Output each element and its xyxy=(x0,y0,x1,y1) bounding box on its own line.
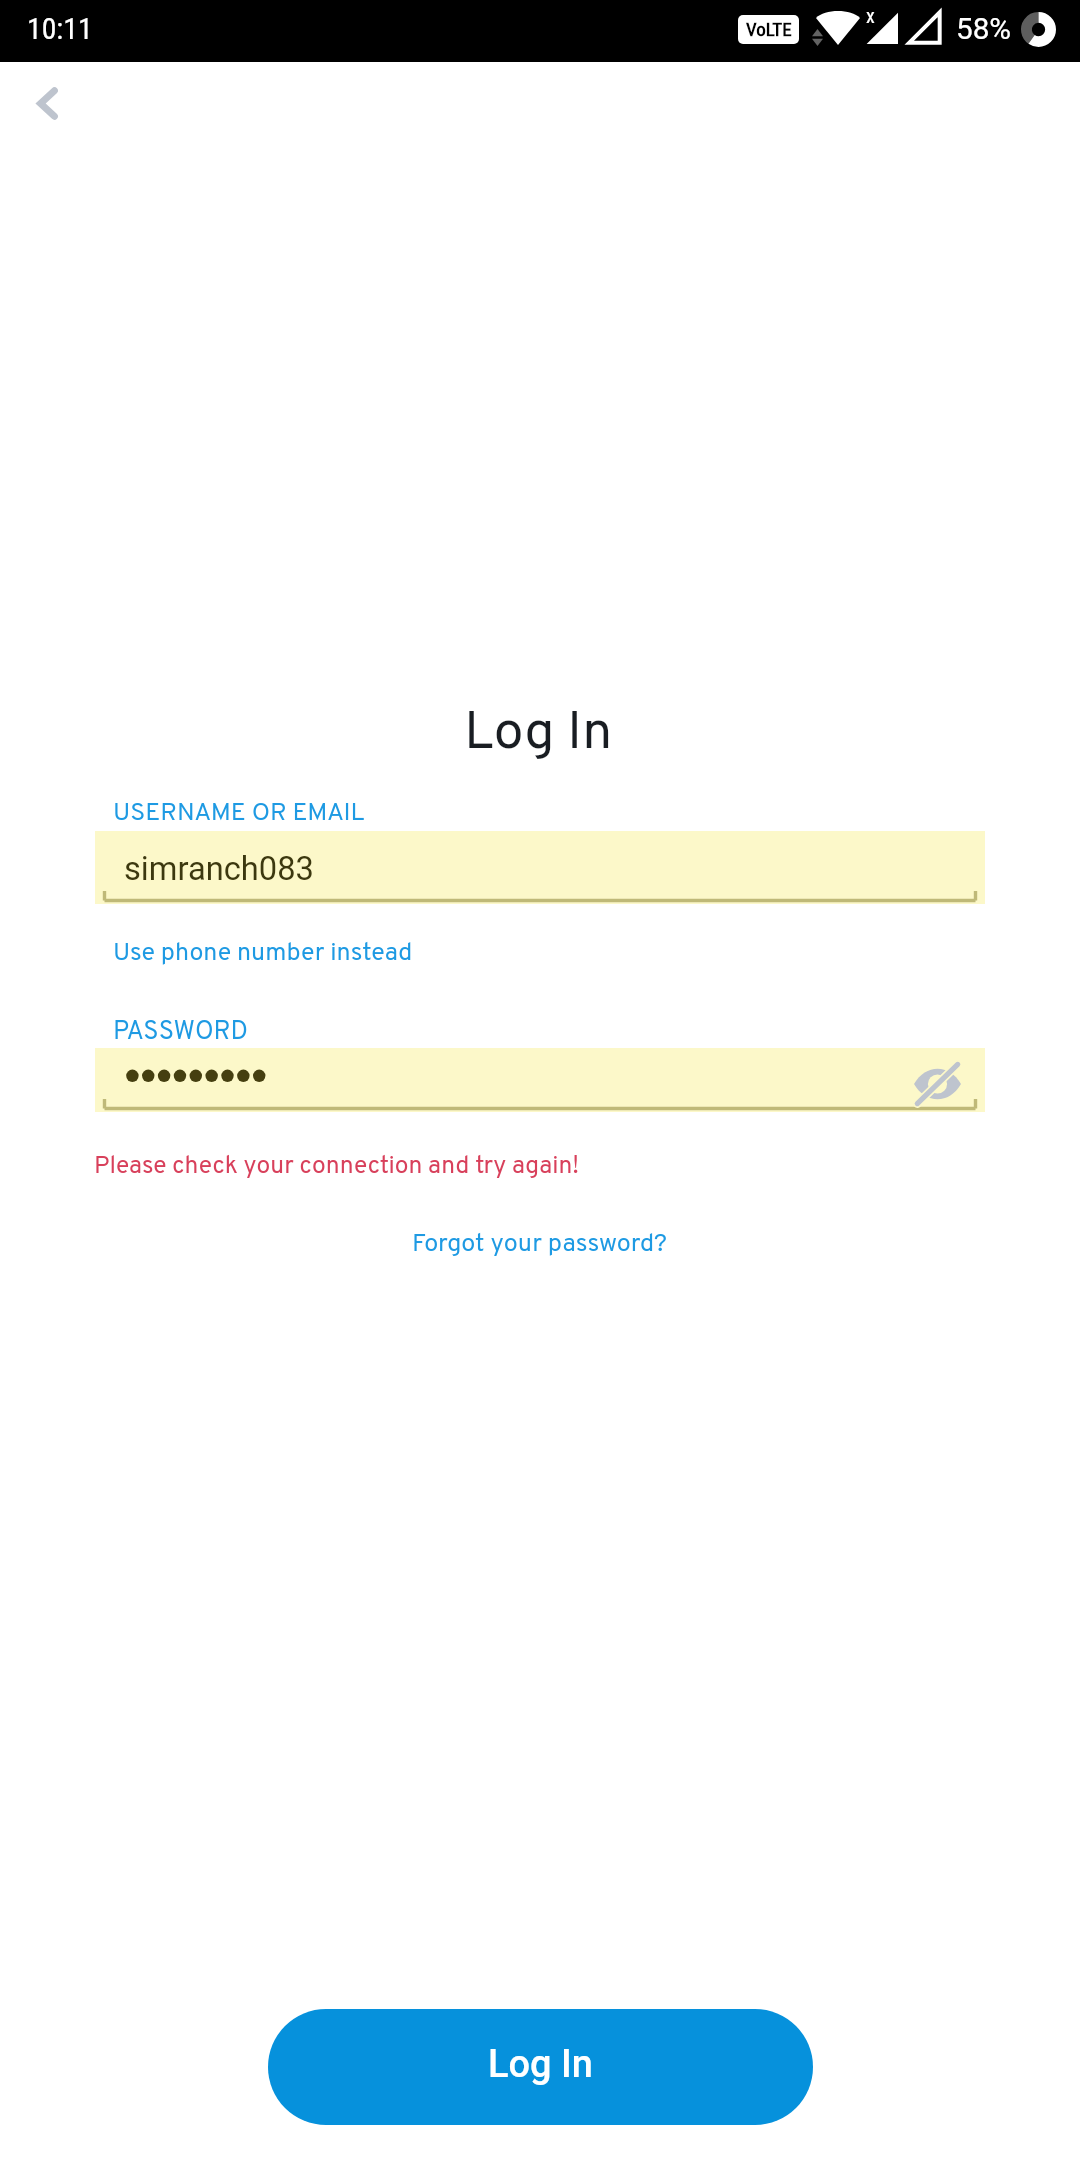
button[interactable]: Log In xyxy=(268,2009,813,2125)
staticText: simranch083 xyxy=(124,850,314,888)
button[interactable]: Forgot your password? xyxy=(412,1229,668,1261)
staticText: VoLTE xyxy=(746,18,792,40)
button[interactable]: Back xyxy=(5,61,89,145)
staticText: Please check your connection and try aga… xyxy=(94,1151,580,1182)
button[interactable]: Show password xyxy=(895,1048,975,1112)
staticText: 10:11 xyxy=(27,11,93,46)
button[interactable]: Use phone number instead xyxy=(113,938,413,970)
button[interactable]: Show password xyxy=(95,1048,985,1112)
staticText: 58% xyxy=(956,11,1012,46)
staticText: Log In xyxy=(488,2042,593,2086)
button[interactable]: simranch083 xyxy=(95,831,985,904)
staticText: USERNAME OR EMAIL xyxy=(113,798,365,830)
staticText: x xyxy=(866,4,875,27)
staticText: PASSWORD xyxy=(113,1016,249,1048)
staticText: Log In xyxy=(464,701,613,769)
